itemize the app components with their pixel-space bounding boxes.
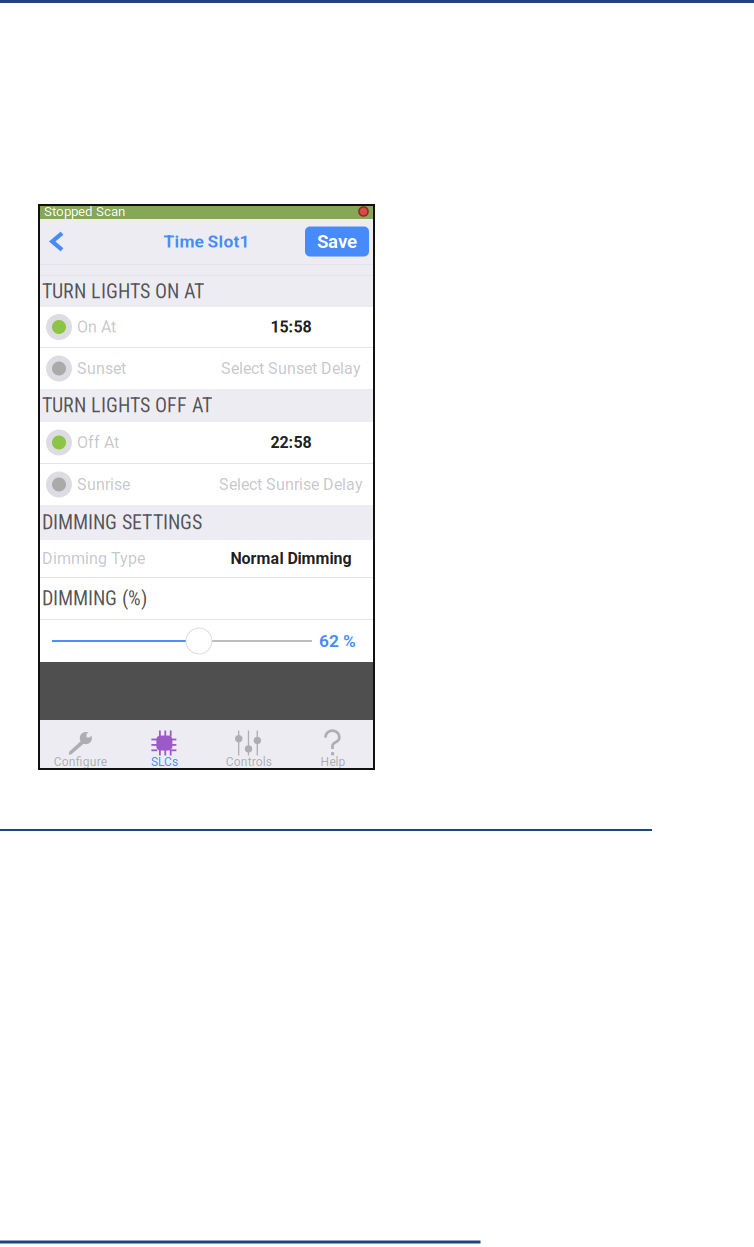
button[interactable]: Sunrise <box>38 464 375 505</box>
staticText: Controls <box>226 755 272 769</box>
staticText: Select Sunrise Delay <box>219 475 363 494</box>
staticText: Help <box>320 755 345 769</box>
staticText: Stopped Scan <box>44 204 125 219</box>
staticText: 62 % <box>319 631 356 651</box>
button[interactable]: On At <box>38 307 375 347</box>
staticText: Time Slot1 <box>163 231 249 252</box>
button[interactable]: SLCs <box>122 720 206 770</box>
staticText: Save <box>317 231 357 252</box>
button[interactable]: Controls <box>206 720 291 770</box>
button[interactable]: Dimming Type <box>38 540 375 577</box>
button[interactable]: Configure <box>38 720 122 770</box>
staticText: TURN LIGHTS ON AT <box>42 280 204 303</box>
staticText: Select Sunset Delay <box>221 359 361 378</box>
staticText: Sunset <box>77 359 126 378</box>
staticText: Off At <box>77 433 119 452</box>
staticText: DIMMING (%) <box>42 587 147 610</box>
button[interactable]: Save <box>305 226 369 256</box>
button[interactable]: Back <box>38 222 76 261</box>
staticText: Normal Dimming <box>230 549 351 568</box>
button[interactable]: Help <box>291 720 375 770</box>
staticText: 22:58 <box>270 433 311 452</box>
staticText: TURN LIGHTS OFF AT <box>42 394 212 417</box>
button[interactable]: Off At <box>38 422 375 463</box>
staticText: 15:58 <box>270 318 311 336</box>
staticText: SLCs <box>151 755 178 769</box>
staticText: Configure <box>54 755 107 769</box>
staticText: Dimming Type <box>42 549 145 568</box>
button[interactable]: Sunset <box>38 348 375 389</box>
staticText: On At <box>77 318 116 336</box>
staticText: Sunrise <box>77 475 130 494</box>
staticText: DIMMING SETTINGS <box>42 511 202 534</box>
